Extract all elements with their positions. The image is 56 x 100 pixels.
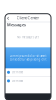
staticText: Lorem ipsum dolor sit amet — [9, 54, 46, 58]
staticText: Item text — [12, 79, 23, 83]
staticText: Client Center — [16, 15, 39, 20]
staticText: No messages yet — [17, 35, 39, 39]
staticText: ‹ — [7, 13, 9, 22]
staticText: Messages — [7, 22, 26, 27]
staticText: Item text — [12, 70, 23, 74]
staticText: consectetur adipiscing elit — [9, 58, 46, 61]
